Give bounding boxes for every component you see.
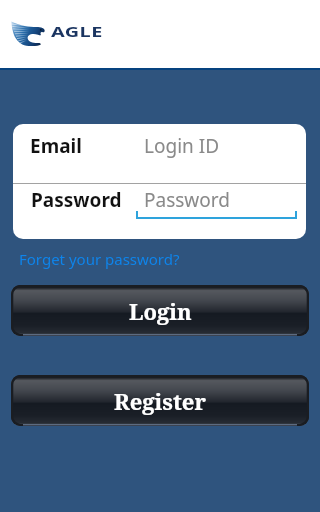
button[interactable]: Password bbox=[13, 184, 306, 239]
button[interactable]: Register bbox=[11, 375, 309, 426]
staticText: Password bbox=[144, 187, 230, 213]
button[interactable]: Login bbox=[11, 285, 309, 336]
button[interactable]: Email bbox=[13, 124, 306, 183]
staticText: Login ID bbox=[144, 133, 220, 159]
staticText: Login bbox=[129, 296, 192, 326]
staticText: Password bbox=[31, 187, 122, 213]
staticText: Register bbox=[114, 386, 206, 416]
button[interactable]: Forget your password? bbox=[19, 249, 180, 269]
staticText: Email bbox=[30, 133, 82, 159]
staticText: AGLE bbox=[51, 22, 103, 41]
